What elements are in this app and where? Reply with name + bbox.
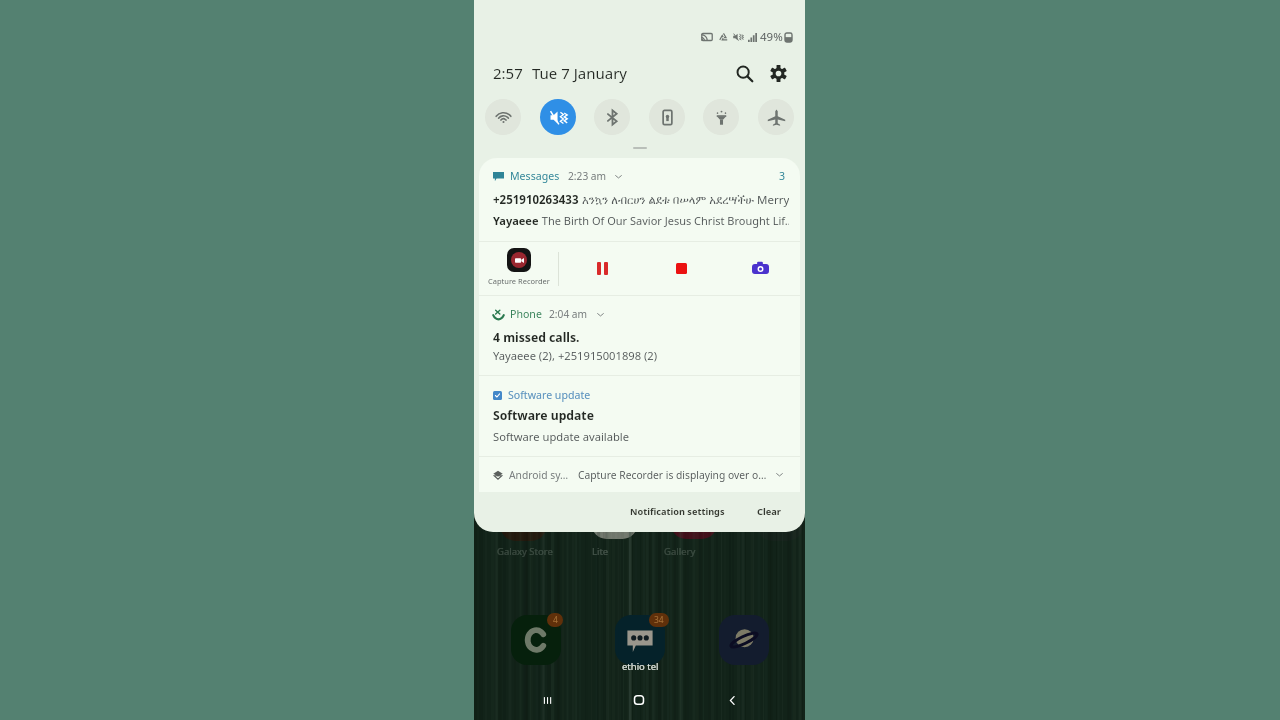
button[interactable]: Sound off — [540, 99, 576, 135]
button[interactable]: Mobile data — [649, 99, 685, 135]
staticText: ethio tel — [622, 660, 659, 673]
staticText: Software update — [508, 388, 591, 402]
button[interactable]: Wi-Fi — [485, 99, 521, 135]
staticText: Lite — [592, 545, 609, 558]
staticText: እንኳን ለብርሀን ልደቱ በሠላም አደረሣችሁ Merry… — [579, 192, 789, 208]
button[interactable]: Phone app — [511, 615, 561, 665]
staticText: 4 missed calls. — [493, 329, 580, 346]
staticText: Android sy… — [509, 468, 569, 482]
button[interactable]: Internet — [719, 615, 769, 665]
button[interactable]: Home — [626, 687, 652, 713]
staticText: 2:04 am — [549, 307, 588, 321]
button[interactable]: Messages — [479, 158, 800, 241]
button[interactable]: Screenshot — [721, 242, 800, 295]
staticText: +251910263433 — [493, 192, 579, 208]
button[interactable]: Flight mode — [758, 99, 794, 135]
button[interactable]: Notification settings — [624, 500, 731, 523]
button[interactable]: Back — [719, 687, 745, 713]
button[interactable]: Search — [730, 59, 758, 87]
button[interactable]: Settings — [764, 59, 792, 87]
staticText: Capture Recorder is displaying over o… — [578, 468, 767, 482]
staticText: 4 — [553, 614, 558, 626]
button[interactable]: ethio tel — [615, 615, 665, 665]
button[interactable]: Flashlight — [703, 99, 739, 135]
staticText: Notification settings — [630, 505, 725, 518]
staticText: Galaxy Store — [497, 545, 553, 558]
staticText: Yayaeee (2), +251915001898 (2) — [493, 348, 658, 363]
staticText: 2:57 — [493, 63, 523, 83]
staticText: 34 — [654, 614, 664, 626]
staticText: Software update available — [493, 429, 630, 444]
staticText: 3 — [779, 169, 786, 183]
button[interactable]: Recents — [534, 687, 560, 713]
staticText: Phone — [510, 307, 542, 321]
staticText: Gallery — [664, 545, 696, 558]
button[interactable]: Phone — [479, 296, 800, 375]
staticText: Clear — [757, 505, 782, 518]
button[interactable]: Android sy… — [493, 457, 789, 492]
staticText: Tue 7 January — [532, 63, 628, 83]
button[interactable]: Clear — [751, 500, 788, 523]
staticText: Software update — [493, 407, 594, 424]
button[interactable]: Capture Recorder — [479, 242, 558, 295]
button[interactable]: Software update — [479, 376, 800, 456]
button[interactable]: Stop — [642, 242, 721, 295]
staticText: Yayaeee — [493, 213, 539, 228]
staticText: Messages — [510, 169, 560, 183]
staticText: 2:23 am — [568, 169, 607, 183]
button[interactable]: Bluetooth — [594, 99, 630, 135]
button[interactable]: Pause — [563, 242, 642, 295]
staticText: Capture Recorder — [488, 276, 550, 286]
staticText: 49% — [760, 29, 783, 45]
staticText: The Birth Of Our Savior Jesus Christ Bro… — [539, 213, 789, 228]
